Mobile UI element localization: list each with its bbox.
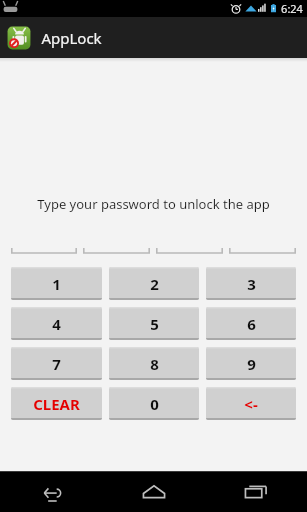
staticText: <- xyxy=(244,394,258,414)
button[interactable]: <- xyxy=(206,387,296,420)
button[interactable]: 7 xyxy=(11,347,102,380)
button[interactable]: 5 xyxy=(109,307,199,340)
staticText: 5 xyxy=(150,314,159,334)
button[interactable]: Password digit xyxy=(11,235,77,255)
staticText: 0 xyxy=(150,394,159,414)
staticText: Type your password to unlock the app xyxy=(37,195,270,213)
button[interactable]: 9 xyxy=(206,347,296,380)
button[interactable]: 8 xyxy=(109,347,199,380)
staticText: 9 xyxy=(247,354,256,374)
button[interactable]: 4 xyxy=(11,307,102,340)
button[interactable]: Back xyxy=(0,471,103,512)
button[interactable]: Password digit xyxy=(83,235,150,255)
button[interactable]: 2 xyxy=(109,267,199,300)
button[interactable]: Recent apps xyxy=(205,471,307,512)
staticText: 1 xyxy=(52,274,61,294)
staticText: 4 xyxy=(52,314,61,334)
staticText: 6:24 xyxy=(281,1,303,16)
button[interactable]: 0 xyxy=(109,387,199,420)
button[interactable]: 3 xyxy=(206,267,296,300)
button[interactable]: Password digit xyxy=(156,235,223,255)
staticText: 2 xyxy=(150,274,159,294)
button[interactable]: CLEAR xyxy=(11,387,102,420)
button[interactable]: 1 xyxy=(11,267,102,300)
staticText: 8 xyxy=(150,354,159,374)
button[interactable]: Password digit xyxy=(229,235,296,255)
staticText: CLEAR xyxy=(33,394,80,414)
staticText: AppLock xyxy=(41,28,102,48)
button[interactable]: Home xyxy=(103,471,205,512)
staticText: 6 xyxy=(247,314,256,334)
button[interactable]: 6 xyxy=(206,307,296,340)
staticText: 3 xyxy=(247,274,256,294)
staticText: 7 xyxy=(52,354,61,374)
